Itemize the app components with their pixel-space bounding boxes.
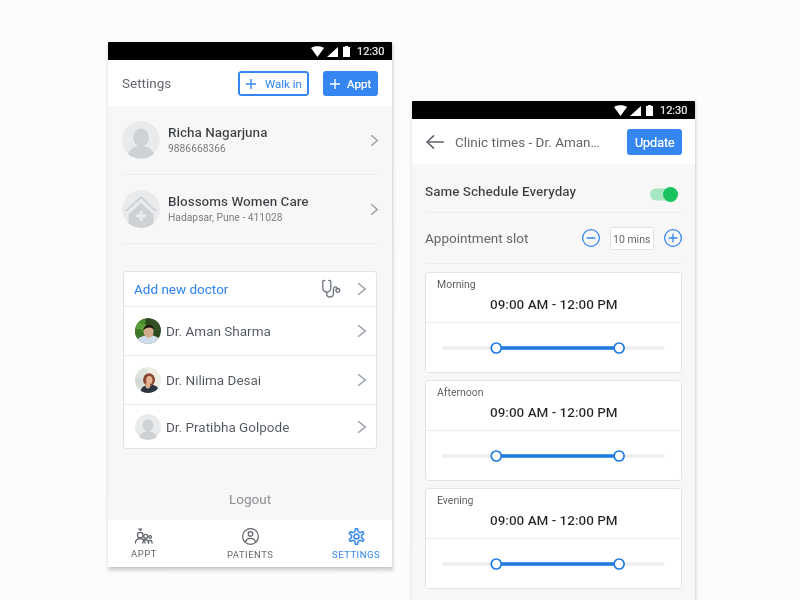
staticText: Blossoms Women Care xyxy=(168,193,309,209)
button[interactable]: Evening xyxy=(425,488,682,589)
button[interactable]: Walk in xyxy=(238,71,309,96)
staticText: 9886668366 xyxy=(168,142,226,154)
button[interactable]: Update xyxy=(627,129,682,155)
button[interactable]: Same Schedule Everyday xyxy=(412,164,695,212)
staticText: SETTINGS xyxy=(332,549,381,560)
button[interactable]: Appt xyxy=(323,71,378,96)
staticText: APPT xyxy=(131,548,157,559)
staticText: Add new doctor xyxy=(134,281,229,297)
staticText: 12:30 xyxy=(357,45,385,58)
staticText: 09:00 AM - 12:00 PM xyxy=(490,404,618,420)
staticText: 12:30 xyxy=(660,104,688,117)
staticText: Dr. Pratibha Golpode xyxy=(166,419,290,435)
button[interactable]: Increase xyxy=(664,229,682,247)
button[interactable]: Dr. Nilima Desai xyxy=(123,356,377,404)
staticText: 10 mins xyxy=(613,233,651,245)
staticText: Update xyxy=(635,135,675,150)
button[interactable]: PATIENTS xyxy=(219,520,281,567)
staticText: Logout xyxy=(229,491,272,507)
button[interactable]: Blossoms Women Care xyxy=(108,175,392,243)
staticText: Same Schedule Everyday xyxy=(425,183,577,199)
staticText: Evening xyxy=(437,494,474,506)
staticText: Settings xyxy=(122,75,172,91)
button[interactable]: Richa Nagarjuna xyxy=(108,106,392,174)
button[interactable]: SETTINGS xyxy=(325,520,387,567)
staticText: Appointment slot xyxy=(425,230,529,246)
staticText: Afternoon xyxy=(437,386,484,398)
staticText: Morning xyxy=(437,278,476,290)
button[interactable]: Logout xyxy=(108,482,392,516)
button[interactable]: APPT xyxy=(113,520,175,567)
staticText: Appt xyxy=(347,77,372,90)
staticText: Dr. Nilima Desai xyxy=(166,372,262,388)
button[interactable]: Decrease xyxy=(582,229,600,247)
staticText: Dr. Aman Sharma xyxy=(166,323,271,339)
staticText: Walk in xyxy=(265,77,302,90)
staticText: Richa Nagarjuna xyxy=(168,124,268,140)
staticText: PATIENTS xyxy=(227,549,274,560)
button[interactable]: Morning xyxy=(425,272,682,373)
staticText: 09:00 AM - 12:00 PM xyxy=(490,512,618,528)
button[interactable]: Same Schedule Everyday xyxy=(650,187,678,202)
button[interactable]: Dr. Aman Sharma xyxy=(123,307,377,355)
button[interactable]: Add new doctor xyxy=(123,271,377,306)
button[interactable]: Dr. Pratibha Golpode xyxy=(123,405,377,449)
button[interactable]: Back xyxy=(423,130,447,154)
staticText: Clinic times - Dr. Aman… xyxy=(455,134,600,150)
staticText: 09:00 AM - 12:00 PM xyxy=(490,296,618,312)
staticText: Hadapsar, Pune - 411028 xyxy=(168,211,283,223)
button[interactable]: Afternoon xyxy=(425,380,682,481)
